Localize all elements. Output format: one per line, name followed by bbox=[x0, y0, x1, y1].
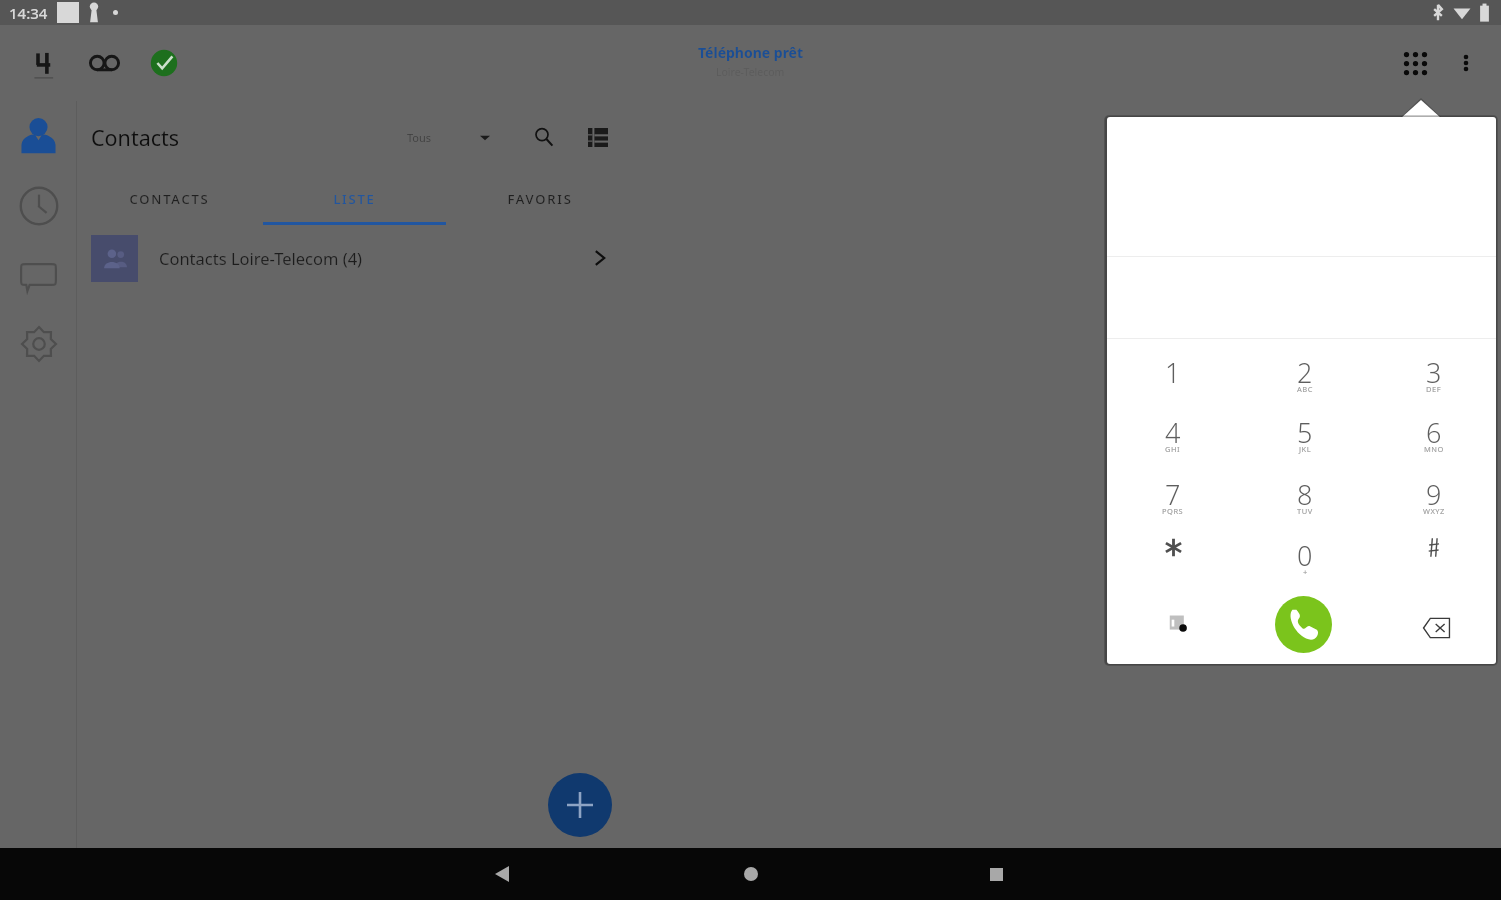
button[interactable]: Star bbox=[1113, 526, 1233, 586]
staticText: Téléphone prêt bbox=[698, 43, 804, 62]
staticText: TUV bbox=[1297, 506, 1313, 516]
button[interactable]: Backspace bbox=[1406, 598, 1466, 658]
staticText: LISTE bbox=[333, 190, 376, 208]
button[interactable]: 7 bbox=[1113, 465, 1233, 525]
button[interactable]: Voicemail bbox=[81, 40, 127, 86]
staticText: 3 bbox=[1426, 354, 1442, 391]
button[interactable]: More options bbox=[1443, 40, 1489, 86]
button[interactable]: Filter: Tous bbox=[403, 130, 494, 145]
staticText: DEF bbox=[1426, 384, 1442, 394]
button[interactable]: Home bbox=[727, 848, 775, 900]
staticText: PQRS bbox=[1162, 506, 1184, 516]
staticText: 2 bbox=[1297, 354, 1313, 391]
button[interactable]: Messages bbox=[4, 240, 73, 309]
button[interactable]: Contacts Loire-Telecom (4) bbox=[77, 225, 632, 291]
staticText: GHI bbox=[1165, 444, 1181, 454]
button[interactable]: Back bbox=[478, 848, 526, 900]
button[interactable]: Show dialpad bbox=[1389, 37, 1441, 89]
staticText: CONTACTS bbox=[129, 190, 210, 208]
button[interactable]: Pound bbox=[1374, 526, 1494, 586]
button[interactable]: Call history bbox=[4, 171, 73, 240]
button[interactable]: FAVORIS bbox=[447, 173, 632, 225]
staticText: + bbox=[1303, 567, 1308, 577]
staticText: 7 bbox=[1165, 476, 1181, 513]
button[interactable]: Recent apps bbox=[972, 848, 1020, 900]
staticText: ABC bbox=[1297, 384, 1313, 394]
staticText: WXYZ bbox=[1423, 506, 1445, 516]
button[interactable]: Keypad options bbox=[1148, 593, 1208, 653]
button[interactable]: LISTE bbox=[262, 173, 447, 225]
button[interactable]: 1 bbox=[1113, 343, 1233, 403]
button[interactable]: Call bbox=[1275, 596, 1332, 653]
staticText: MNO bbox=[1424, 444, 1444, 454]
button[interactable]: 9 bbox=[1374, 465, 1494, 525]
button[interactable]: Search bbox=[522, 115, 566, 159]
button[interactable]: Network status bbox=[141, 40, 187, 86]
staticText: FAVORIS bbox=[507, 190, 573, 208]
staticText: Contacts Loire-Telecom (4) bbox=[159, 247, 363, 269]
button[interactable]: 6 bbox=[1374, 403, 1494, 463]
button[interactable]: Change view bbox=[576, 115, 620, 159]
button[interactable]: Settings bbox=[4, 309, 73, 378]
staticText: Tous bbox=[407, 130, 432, 145]
button[interactable]: CONTACTS bbox=[77, 173, 262, 225]
button[interactable]: 3 bbox=[1374, 343, 1494, 403]
staticText: 14:34 bbox=[9, 3, 48, 23]
button[interactable]: Dialer bbox=[21, 40, 67, 86]
staticText: 1 bbox=[1165, 354, 1181, 391]
button[interactable]: 5 bbox=[1245, 403, 1365, 463]
staticText: JKL bbox=[1299, 444, 1312, 454]
button[interactable]: 2 bbox=[1245, 343, 1365, 403]
staticText: 5 bbox=[1297, 414, 1313, 451]
button[interactable]: 0 bbox=[1245, 526, 1365, 586]
staticText: 0 bbox=[1297, 537, 1313, 574]
staticText: 8 bbox=[1297, 476, 1313, 513]
button[interactable]: 8 bbox=[1245, 465, 1365, 525]
staticText: 4 bbox=[1165, 414, 1181, 451]
staticText: Contacts bbox=[91, 123, 180, 152]
staticText: 9 bbox=[1426, 476, 1442, 513]
button[interactable]: Add contact bbox=[548, 773, 612, 837]
staticText: 6 bbox=[1426, 414, 1442, 451]
button[interactable]: Contacts bbox=[4, 102, 73, 171]
button[interactable]: 4 bbox=[1113, 403, 1233, 463]
